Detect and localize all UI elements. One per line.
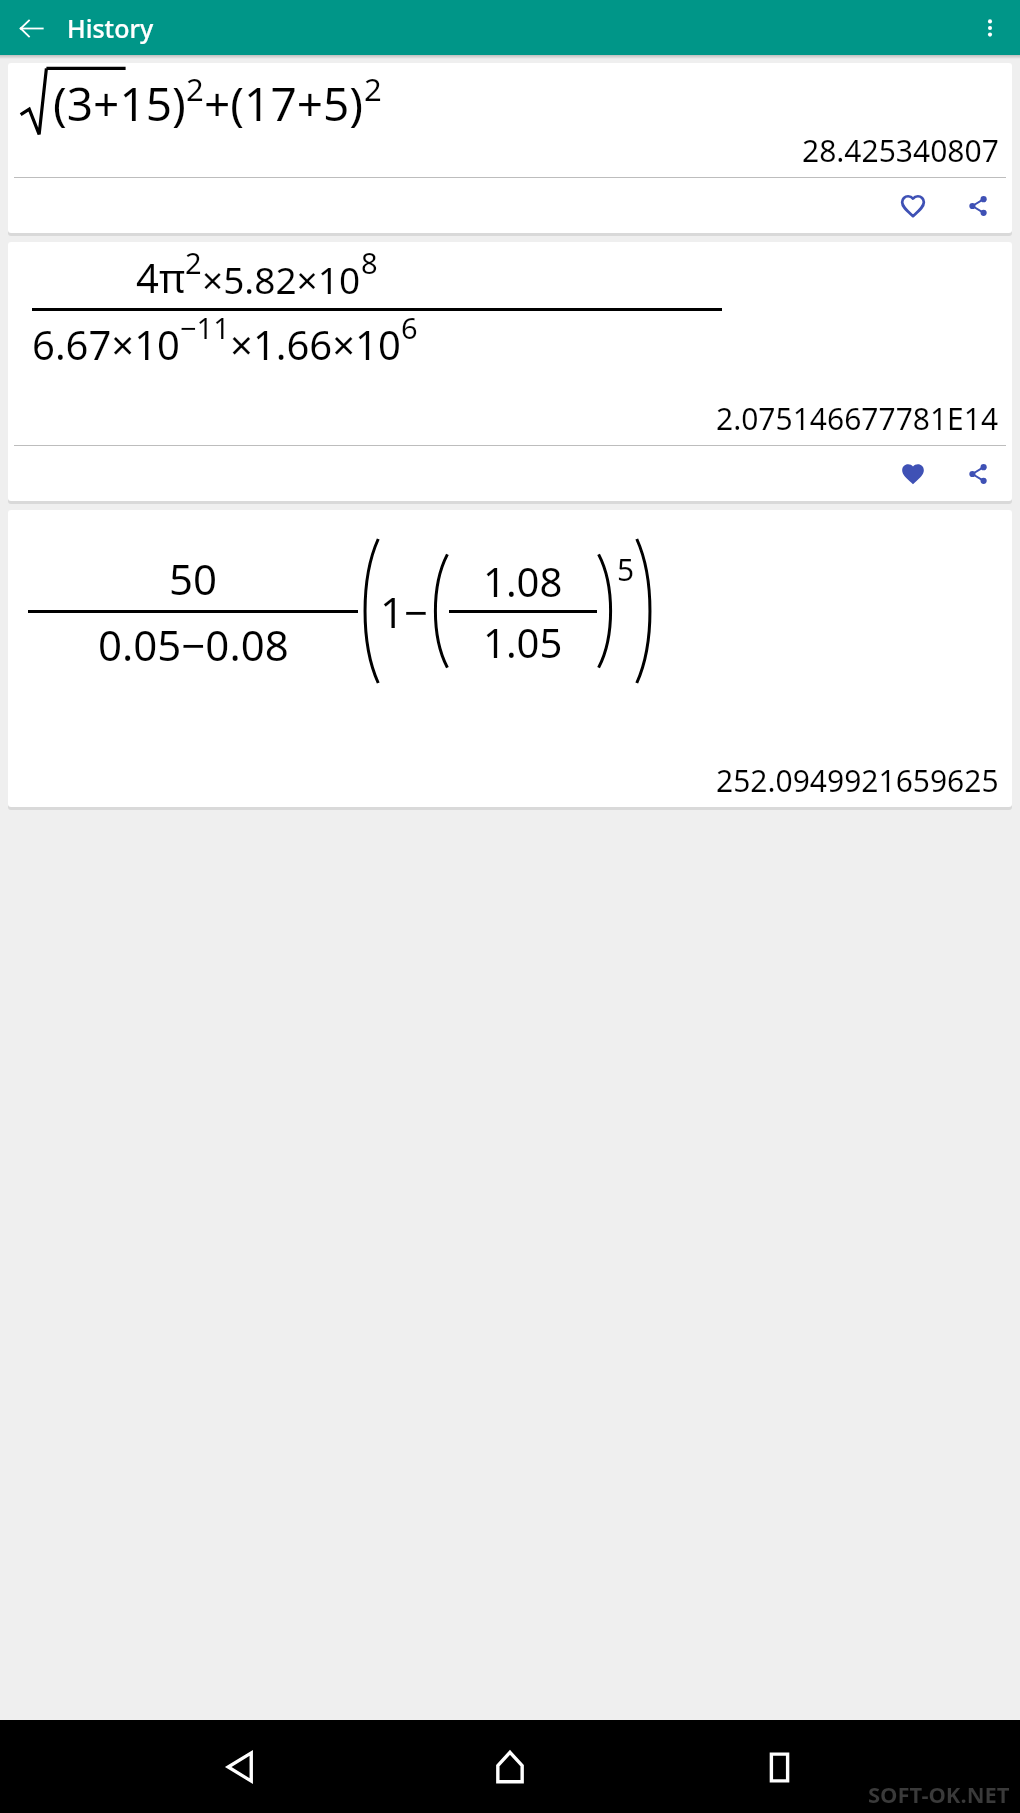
staticText: 28.425340807 — [802, 130, 999, 171]
button[interactable]: Recent apps — [751, 1739, 807, 1795]
staticText: 252.0949921659625 — [716, 760, 999, 801]
staticText: 1− — [380, 583, 429, 640]
staticText: 2 — [186, 68, 204, 110]
staticText: 50 — [169, 550, 218, 607]
staticText: ×5.82×10 — [202, 254, 361, 304]
button[interactable]: Share — [957, 453, 998, 494]
button[interactable]: Favorite — [891, 184, 935, 228]
staticText: −11 — [180, 308, 230, 347]
staticText: 1.05 — [483, 615, 563, 669]
button[interactable]: 50 — [8, 510, 1012, 807]
button[interactable]: Unfavorite — [891, 452, 935, 496]
button[interactable]: Back — [213, 1739, 269, 1795]
staticText: +(17+5) — [204, 72, 364, 135]
staticText: 6.67×10 — [32, 317, 180, 371]
button[interactable]: Home — [482, 1739, 538, 1795]
staticText: 2 — [185, 243, 202, 282]
staticText: 5 — [617, 549, 635, 590]
staticText: 6 — [401, 308, 418, 347]
staticText: 4π — [136, 250, 185, 304]
staticText: SOFT-OK.NET — [868, 1779, 1010, 1809]
button[interactable]: More options — [968, 6, 1012, 50]
button[interactable]: Back — [9, 6, 53, 50]
staticText: History — [67, 11, 154, 45]
button[interactable]: Share — [957, 185, 998, 226]
staticText: 0.05−0.08 — [98, 616, 289, 673]
staticText: 2 — [364, 68, 382, 110]
button[interactable]: 4π — [8, 242, 1012, 501]
staticText: 8 — [361, 243, 378, 282]
staticText: (3+15) — [53, 72, 186, 135]
staticText: 1.08 — [483, 554, 563, 608]
staticText: 2.075146677781E14 — [716, 398, 999, 439]
button[interactable]: (3+15) — [8, 63, 1012, 233]
staticText: ×1.66×10 — [230, 317, 401, 371]
